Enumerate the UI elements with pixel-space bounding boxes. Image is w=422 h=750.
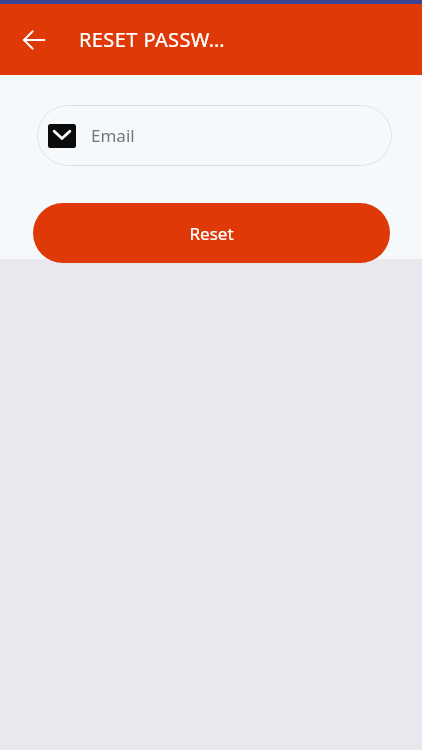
staticText: Reset <box>189 222 234 245</box>
staticText: RESET PASSW… <box>79 26 226 53</box>
button[interactable]: Reset <box>33 203 390 263</box>
button[interactable]: Back <box>12 18 56 62</box>
staticText: Email <box>91 124 135 147</box>
other: Email <box>48 124 76 148</box>
button[interactable]: Email <box>37 105 392 166</box>
